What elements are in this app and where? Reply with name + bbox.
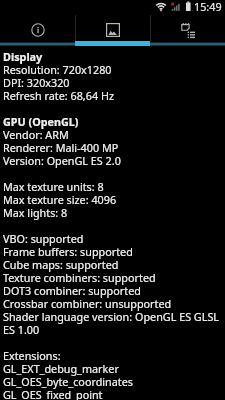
staticText: 15:49 [194,0,222,14]
staticText: Shader language version: OpenGL ES GLSL [3,309,219,324]
staticText: Version: OpenGL ES 2.0 [3,153,121,168]
staticText: GL_OES_byte_coordinates [3,374,133,389]
staticText: Texture combiners: supported [3,270,156,285]
button[interactable]: Graphics [76,15,150,41]
staticText: VBO: supported [3,231,84,246]
staticText: Max texture size: 4096 [3,192,117,207]
staticText: Extensions: [3,348,61,363]
staticText: Max texture units: 8 [3,179,104,194]
staticText: Vendor: ARM [3,127,69,142]
staticText: DPI: 320x320 [3,75,70,90]
staticText: GPU (OpenGL) [3,114,79,129]
staticText: Cube maps: supported [3,257,119,272]
staticText: GL_OES_fixed_point [3,387,103,400]
staticText: GL_EXT_debug_marker [3,361,119,376]
staticText: Refresh rate: 68,64 Hz [3,88,114,103]
staticText: Display [3,49,43,64]
staticText: DOT3 combiner: supported [3,283,141,298]
staticText: Crossbar combiner: unsupported [3,296,172,311]
staticText: Frame buffers: supported [3,244,133,259]
staticText: Resolution: 720x1280 [3,62,112,77]
button[interactable]: Device info [0,15,75,41]
staticText: Max lights: 8 [3,205,68,220]
button[interactable]: Details [151,15,225,41]
staticText: Renderer: Mali-400 MP [3,140,119,155]
staticText: ES 1.00 [3,322,40,337]
